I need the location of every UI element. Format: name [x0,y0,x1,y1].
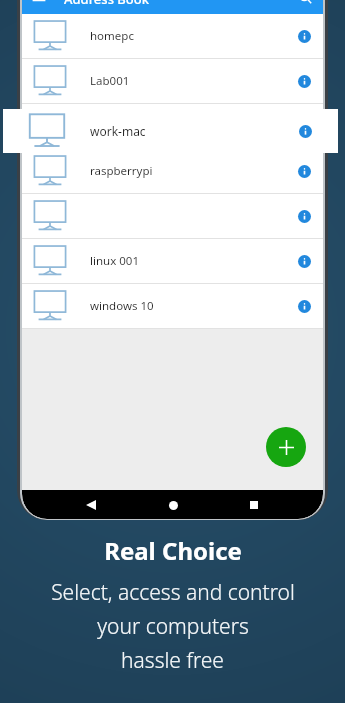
button[interactable]: Info [298,75,311,88]
staticText: Real Choice [104,534,242,567]
button[interactable]: Info [299,125,312,138]
button[interactable]: Back [78,492,104,518]
button[interactable]: Info [298,300,311,313]
staticText: homepc [90,28,134,44]
button[interactable]: Info [298,255,311,268]
staticText: Lab001 [90,73,130,89]
button[interactable]: Recents [241,492,267,518]
button[interactable]: Menu [31,0,47,5]
staticText: linux 001 [90,253,139,269]
button[interactable]: raspberrypi [22,149,323,193]
button[interactable]: linux 001 [22,239,323,283]
staticText: hassle free [121,646,224,675]
button[interactable]: Add [266,427,306,467]
button[interactable]: Lab001 [22,59,323,103]
staticText: work-mac [90,123,146,139]
staticText: your computers [97,612,249,641]
button[interactable]: homepc [22,14,323,58]
staticText: windows 10 [90,298,154,314]
button[interactable]: Search [298,0,313,5]
button[interactable]: Home [160,492,186,518]
button[interactable]: windows 10 [22,284,323,328]
button[interactable]: Info [298,30,311,43]
staticText: Address Book [64,0,150,8]
button[interactable]: Info [22,194,323,238]
staticText: Select, access and control [51,578,295,607]
button[interactable]: work-mac [3,109,338,153]
button[interactable]: Info [298,165,311,178]
staticText: raspberrypi [90,163,153,179]
button[interactable]: Info [298,210,311,223]
